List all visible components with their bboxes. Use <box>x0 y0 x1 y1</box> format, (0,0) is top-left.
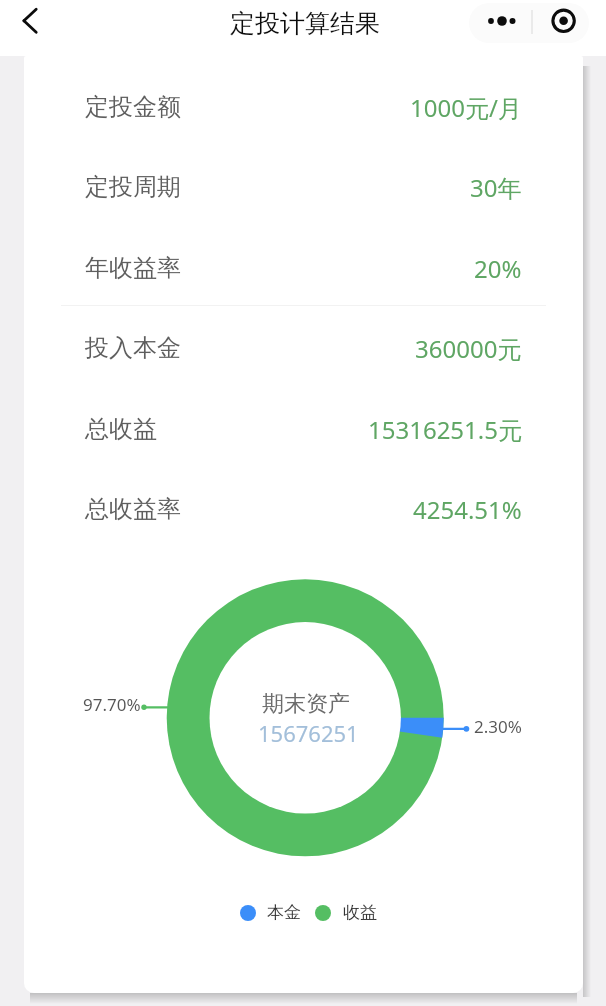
button[interactable]: 投入本金 <box>24 308 583 388</box>
staticText: 360000元 <box>415 332 522 365</box>
staticText: 期末资产 <box>262 690 350 718</box>
staticText: 定投计算结果 <box>230 8 380 39</box>
staticText: 1000元/月 <box>410 91 522 124</box>
staticText: 收益 <box>343 902 377 922</box>
button[interactable]: 定投周期 <box>24 147 583 227</box>
button[interactable]: 总收益 <box>24 389 583 469</box>
staticText: 总收益率 <box>85 494 181 524</box>
staticText: 本金 <box>267 902 301 922</box>
staticText: 2.30% <box>474 715 522 738</box>
staticText: 20% <box>474 252 522 285</box>
staticText: 定投周期 <box>85 172 181 202</box>
staticText: 30年 <box>470 171 522 204</box>
staticText: 定投金额 <box>85 92 181 122</box>
button[interactable]: 定投金额 <box>24 67 583 147</box>
button[interactable]: 总收益率 <box>24 469 583 549</box>
staticText: 97.70% <box>83 693 141 716</box>
button[interactable]: More options <box>469 3 532 43</box>
staticText: 总收益 <box>85 414 157 444</box>
staticText: 年收益率 <box>85 253 181 283</box>
staticText: 投入本金 <box>85 333 181 363</box>
button[interactable]: Close mini program <box>532 3 589 43</box>
button[interactable]: 年收益率 <box>24 228 583 308</box>
button[interactable]: Back <box>2 0 46 42</box>
staticText: 15316251.5元 <box>368 413 522 446</box>
staticText: 15676251 <box>258 718 359 748</box>
staticText: 4254.51% <box>413 493 522 526</box>
